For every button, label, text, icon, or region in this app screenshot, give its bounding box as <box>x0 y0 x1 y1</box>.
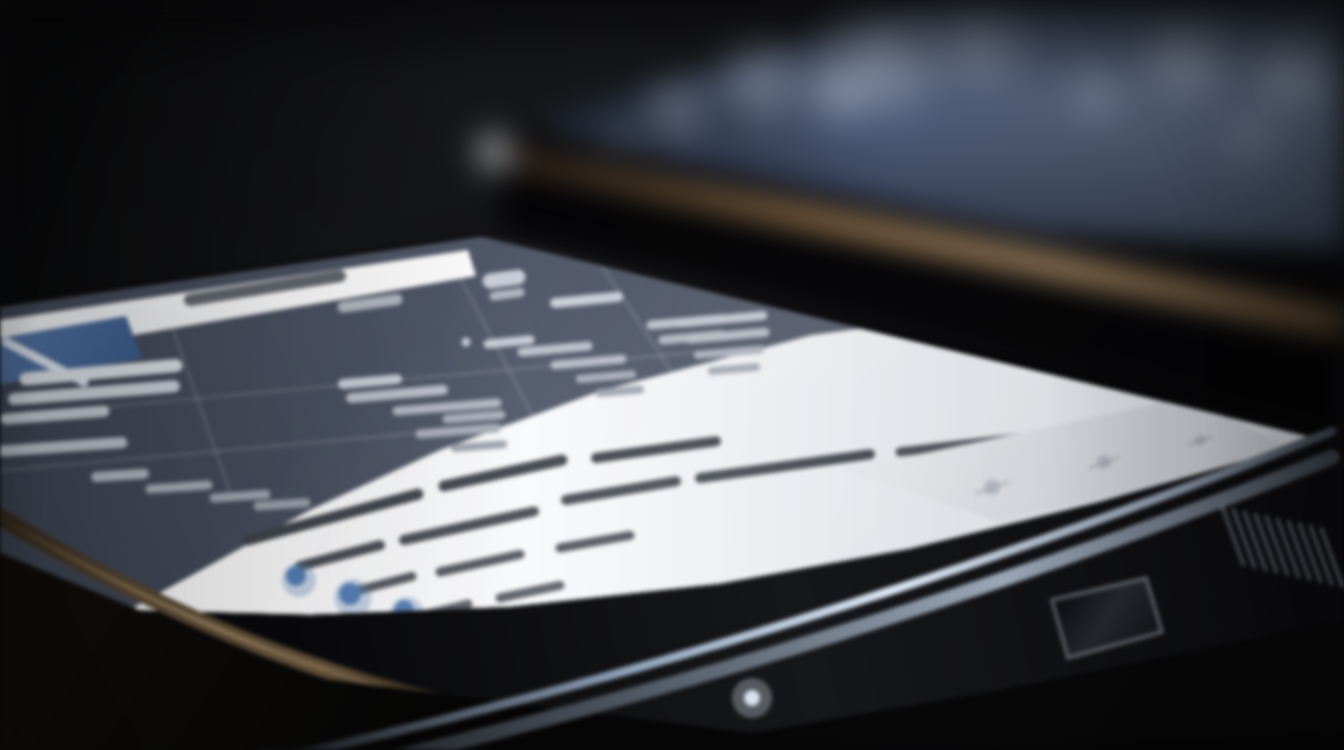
button[interactable]: Smartphone showing an app, resting on a … <box>0 0 1344 750</box>
